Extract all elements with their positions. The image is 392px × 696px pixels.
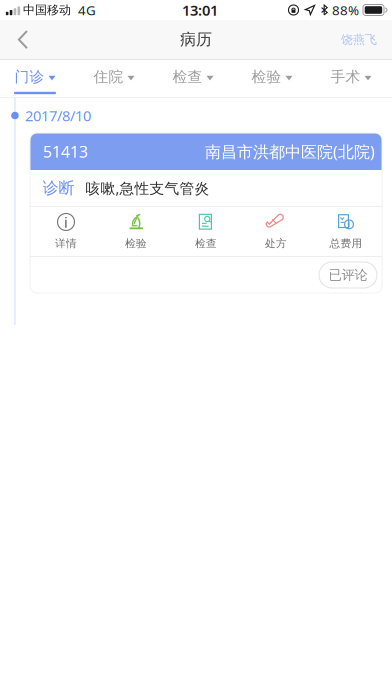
staticText: 诊断 bbox=[42, 178, 74, 198]
button[interactable]: 总费用 bbox=[311, 207, 381, 256]
button[interactable]: 处方 bbox=[241, 207, 311, 256]
staticText: 住院 bbox=[93, 68, 123, 86]
staticText: 检查 bbox=[172, 68, 202, 86]
staticText: 13:01 bbox=[182, 0, 218, 20]
staticText: 门诊 bbox=[14, 68, 44, 86]
staticText: 南昌市洪都中医院(北院) bbox=[205, 141, 375, 162]
staticText: 总费用 bbox=[329, 237, 362, 250]
staticText: 咳嗽,急性支气管炎 bbox=[85, 178, 209, 198]
button[interactable]: 检验 bbox=[251, 60, 293, 97]
staticText: 手术 bbox=[330, 68, 360, 86]
staticText: 中国移动 bbox=[23, 3, 71, 17]
button[interactable]: 门诊 bbox=[14, 60, 56, 97]
button[interactable]: 饶燕飞 bbox=[329, 21, 389, 57]
button[interactable]: i bbox=[31, 207, 101, 256]
staticText: 详情 bbox=[55, 237, 77, 250]
staticText: 饶燕飞 bbox=[341, 32, 377, 47]
button[interactable]: 检查 bbox=[171, 207, 241, 256]
staticText: 51413 bbox=[43, 141, 88, 162]
staticText: 检查 bbox=[195, 237, 217, 250]
button[interactable]: 已评论 bbox=[319, 262, 377, 288]
staticText: 4G bbox=[78, 1, 96, 19]
button[interactable]: 手术 bbox=[330, 60, 372, 97]
staticText: 病历 bbox=[180, 30, 212, 49]
staticText: 检验 bbox=[125, 237, 147, 250]
staticText: 检验 bbox=[251, 68, 281, 86]
staticText: 2017/8/10 bbox=[25, 106, 91, 125]
button[interactable]: 住院 bbox=[93, 60, 135, 97]
staticText: 处方 bbox=[265, 237, 287, 250]
staticText: 88% bbox=[332, 1, 359, 19]
staticText: 已评论 bbox=[328, 267, 367, 283]
button[interactable]: 检查 bbox=[172, 60, 214, 97]
button[interactable]: Back bbox=[3, 21, 43, 57]
staticText: i bbox=[64, 212, 68, 232]
button[interactable]: 检验 bbox=[101, 207, 171, 256]
